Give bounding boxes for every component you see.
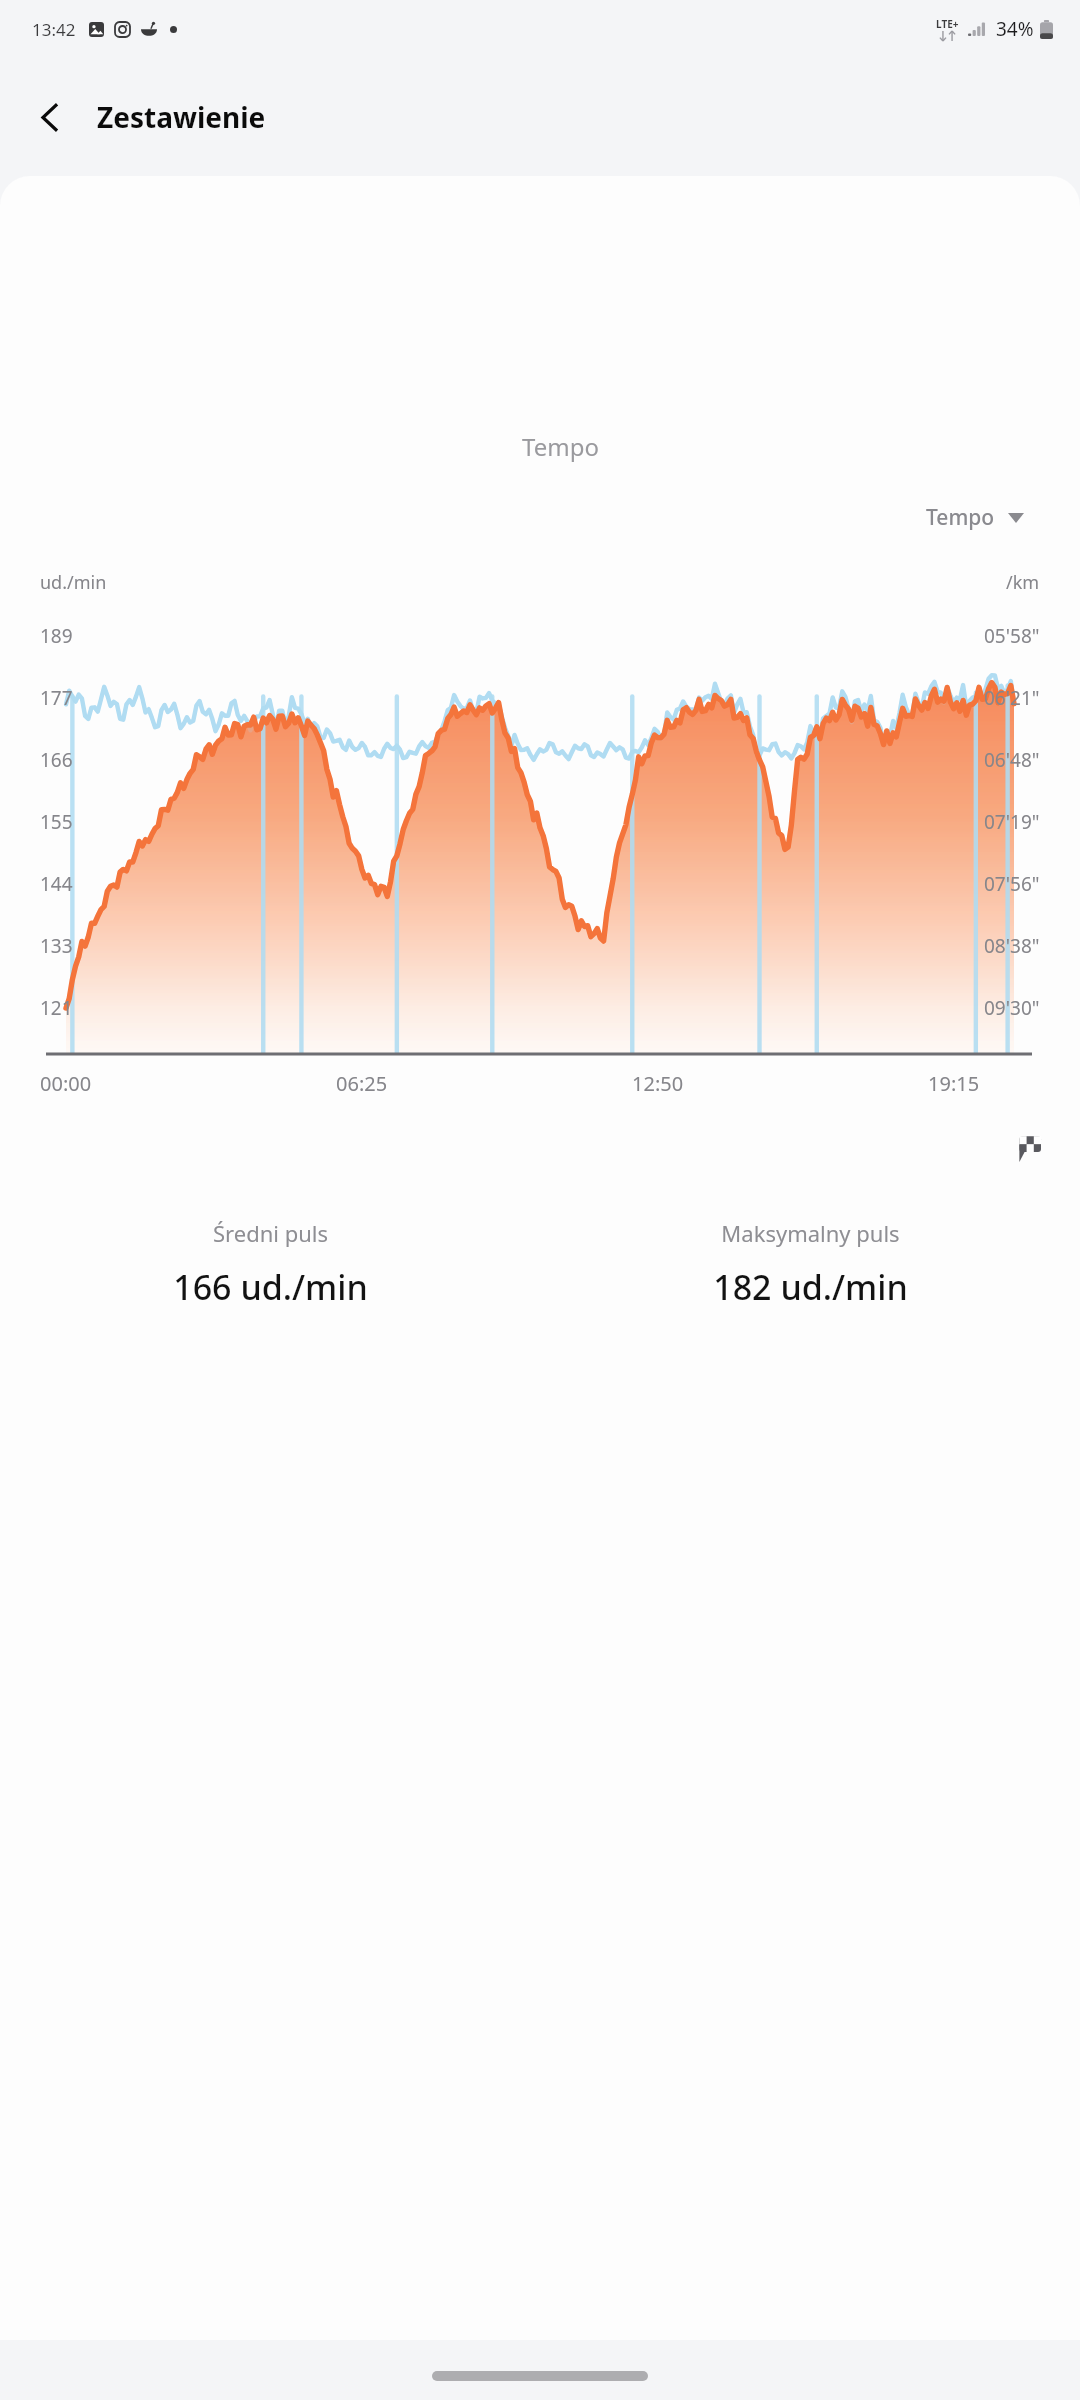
staticText: Zestawienie xyxy=(97,98,266,136)
staticText: 00:00 xyxy=(40,1070,92,1097)
button[interactable]: Tempo xyxy=(40,425,1080,479)
button[interactable]: Wstecz xyxy=(20,87,80,147)
staticText: 166 xyxy=(40,747,73,773)
staticText: Tempo xyxy=(522,430,599,463)
staticText: 08'38" xyxy=(984,933,1040,959)
staticText: 07'19" xyxy=(984,809,1040,835)
staticText: 133 xyxy=(40,933,73,959)
staticText: 177 xyxy=(40,685,73,711)
staticText: Średni puls xyxy=(213,1218,328,1248)
staticText: 189 xyxy=(40,623,73,649)
button[interactable]: Meta xyxy=(1010,1132,1044,1166)
staticText: /km xyxy=(1006,570,1040,595)
button[interactable]: Maksymalny puls xyxy=(540,1218,1080,1310)
staticText: 34% xyxy=(996,16,1034,42)
staticText: 166 ud./min xyxy=(173,1264,368,1310)
staticText: 12:50 xyxy=(632,1070,684,1097)
staticText: LTE+ xyxy=(936,17,959,31)
button[interactable]: Średni puls xyxy=(0,1218,540,1310)
staticText: 07'56" xyxy=(984,871,1040,897)
staticText: 05'58" xyxy=(984,623,1040,649)
staticText: 06:25 xyxy=(336,1070,388,1097)
staticText: 144 xyxy=(40,871,73,897)
staticText: Maksymalny puls xyxy=(721,1218,900,1248)
staticText: 09'30" xyxy=(984,995,1040,1021)
button[interactable]: Tempo xyxy=(920,497,1030,538)
staticText: ud./min xyxy=(40,570,107,595)
staticText: Tempo xyxy=(926,503,995,532)
staticText: 13:42 xyxy=(32,18,76,41)
staticText: 121 xyxy=(40,995,73,1021)
staticText: 155 xyxy=(40,809,73,835)
staticText: 19:15 xyxy=(928,1070,980,1097)
staticText: 182 ud./min xyxy=(713,1264,908,1310)
staticText: 06'21" xyxy=(984,685,1040,711)
staticText: 06'48" xyxy=(984,747,1040,773)
